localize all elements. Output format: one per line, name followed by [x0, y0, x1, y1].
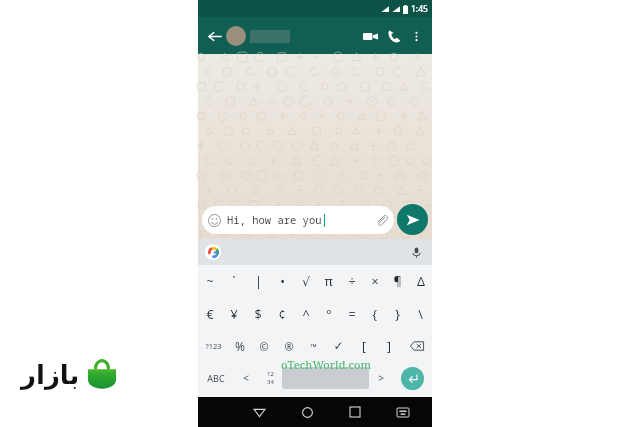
button[interactable]: Emoji	[202, 206, 394, 234]
staticText: ✓	[333, 339, 344, 353]
staticText: <	[243, 371, 249, 385]
button[interactable]	[226, 26, 358, 46]
button[interactable]: Video call	[358, 24, 382, 48]
button[interactable]: ×	[363, 265, 386, 298]
button[interactable]: Back	[203, 25, 225, 47]
button[interactable]: =	[340, 298, 363, 330]
button[interactable]: {	[363, 298, 386, 330]
button[interactable]: Google	[205, 244, 221, 260]
button[interactable]: ¥	[222, 298, 246, 330]
button[interactable]: ~	[198, 265, 222, 298]
button[interactable]: 12	[258, 362, 282, 394]
button[interactable]: Bazaar	[10, 343, 128, 407]
button[interactable]: °	[317, 298, 340, 330]
staticText: بازار	[21, 360, 80, 390]
button[interactable]: π	[317, 265, 340, 298]
button[interactable]: ©	[252, 330, 276, 362]
staticText: ~	[206, 273, 214, 290]
staticText: ¶	[393, 273, 402, 290]
staticText: ABC	[207, 372, 225, 384]
button[interactable]: ABC	[198, 362, 234, 394]
button[interactable]: ®	[276, 330, 301, 362]
staticText: =	[348, 306, 356, 323]
staticText: >	[378, 371, 384, 385]
button[interactable]: ¶	[386, 265, 409, 298]
staticText: `	[232, 273, 236, 290]
button[interactable]: Emoji	[207, 213, 222, 228]
button[interactable]: Space	[282, 367, 369, 389]
staticText: 12	[267, 370, 274, 378]
button[interactable]: Voice input	[408, 244, 424, 260]
staticText: ?123	[205, 341, 222, 351]
button[interactable]: \	[409, 298, 432, 330]
button[interactable]: }	[386, 298, 409, 330]
button[interactable]: ]	[376, 330, 401, 362]
button[interactable]: Δ	[409, 265, 432, 298]
staticText: |	[255, 273, 262, 290]
staticText: €	[206, 306, 214, 323]
staticText: \	[418, 306, 423, 323]
staticText: Hi, how are you	[227, 213, 322, 227]
button[interactable]: |	[246, 265, 270, 298]
staticText: ¥	[230, 306, 238, 323]
staticText: %	[235, 338, 245, 354]
staticText: oTechWorld.com	[281, 357, 371, 372]
button[interactable]: More options	[406, 26, 426, 46]
staticText: }	[395, 306, 400, 323]
staticText: 34	[267, 378, 274, 386]
button[interactable]: ?123	[198, 330, 228, 362]
staticText: ®	[284, 339, 294, 354]
button[interactable]: Send	[397, 204, 428, 235]
button[interactable]: Enter	[401, 367, 424, 390]
staticText: ×	[371, 273, 379, 290]
button[interactable]: ^	[294, 298, 317, 330]
staticText: ™	[310, 341, 317, 352]
button[interactable]: %	[228, 330, 252, 362]
staticText: √	[302, 274, 310, 289]
button[interactable]: Home	[283, 397, 331, 427]
staticText: 1:45	[411, 3, 428, 15]
button[interactable]: `	[222, 265, 246, 298]
button[interactable]: Keyboard	[379, 397, 427, 427]
button[interactable]: Voice call	[382, 24, 406, 48]
button[interactable]: ¢	[270, 298, 294, 330]
staticText: {	[372, 306, 377, 323]
button[interactable]: ÷	[340, 265, 363, 298]
staticText: °	[326, 306, 332, 323]
staticText: ¢	[278, 306, 286, 323]
button[interactable]: €	[198, 298, 222, 330]
button[interactable]: √	[294, 265, 317, 298]
button[interactable]: Back	[235, 397, 283, 427]
staticText: ©	[259, 339, 269, 354]
button[interactable]: Backspace	[401, 330, 432, 362]
button[interactable]: ✓	[326, 330, 351, 362]
button[interactable]: <	[234, 362, 258, 394]
button[interactable]: Attach	[374, 213, 389, 228]
button[interactable]: $	[246, 298, 270, 330]
staticText: $	[254, 306, 262, 323]
button[interactable]: •	[270, 265, 294, 298]
staticText: ]	[387, 338, 391, 354]
staticText: •	[280, 273, 285, 290]
staticText: [	[362, 338, 366, 354]
button[interactable]: >	[369, 362, 393, 394]
button[interactable]: ™	[301, 330, 326, 362]
button[interactable]: Recent apps	[331, 397, 379, 427]
staticText: Δ	[417, 273, 425, 290]
button[interactable]: [	[351, 330, 376, 362]
staticText: π	[324, 273, 333, 290]
staticText: ^	[302, 306, 310, 323]
staticText: ÷	[348, 273, 356, 290]
